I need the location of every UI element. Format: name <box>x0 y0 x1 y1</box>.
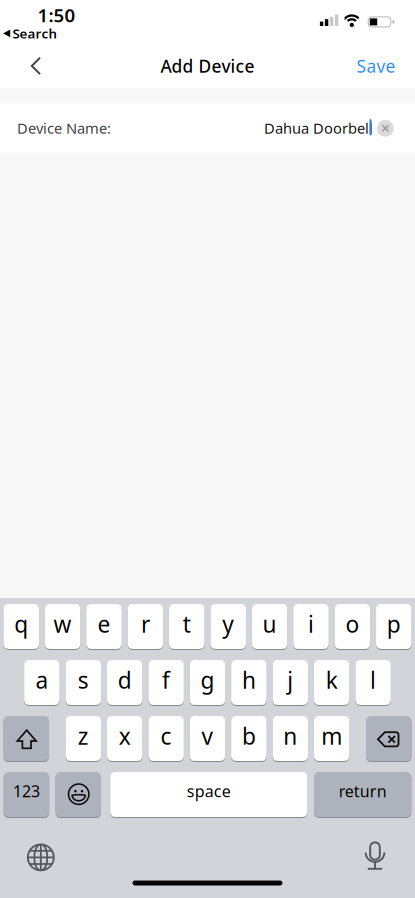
button[interactable]: a <box>24 660 60 705</box>
staticText: k <box>326 665 338 695</box>
button[interactable]: m <box>314 716 349 761</box>
button[interactable]: o <box>335 604 370 649</box>
button[interactable]: e <box>86 604 122 649</box>
staticText: space <box>187 780 231 802</box>
staticText: d <box>118 665 132 695</box>
button[interactable]: w <box>45 604 80 649</box>
staticText: b <box>242 721 256 751</box>
staticText: o <box>345 609 359 639</box>
staticText: r <box>141 609 150 639</box>
staticText: Device Name: <box>17 118 111 138</box>
staticText: z <box>78 721 89 751</box>
staticText: c <box>161 721 172 751</box>
button[interactable] <box>358 839 392 873</box>
staticText: f <box>162 665 170 695</box>
button[interactable]: v <box>190 716 225 761</box>
button[interactable]: q <box>3 604 39 649</box>
staticText: v <box>201 721 213 751</box>
button[interactable]: space <box>110 772 307 817</box>
button[interactable]: k <box>314 660 349 705</box>
staticText: p <box>387 609 401 639</box>
button[interactable]: r <box>128 604 163 649</box>
button[interactable]: c <box>148 716 184 761</box>
staticText: a <box>35 665 48 695</box>
staticText: return <box>339 780 387 802</box>
staticText: Add Device <box>160 54 254 77</box>
staticText: y <box>222 609 234 639</box>
staticText: q <box>14 609 28 639</box>
button[interactable]: Save <box>356 54 395 77</box>
button[interactable]: f <box>148 660 184 705</box>
button[interactable] <box>55 772 101 817</box>
button[interactable] <box>14 44 58 88</box>
button[interactable]: d <box>107 660 142 705</box>
button[interactable]: z <box>66 716 101 761</box>
staticText: s <box>78 665 89 695</box>
staticText: e <box>97 609 110 639</box>
button[interactable]: i <box>293 604 329 649</box>
staticText: m <box>321 721 342 751</box>
staticText: g <box>200 665 214 695</box>
button[interactable]: j <box>273 660 308 705</box>
button[interactable]: g <box>190 660 225 705</box>
staticText: Dahua Doorbell <box>264 118 373 138</box>
staticText: j <box>287 665 293 695</box>
button[interactable]: n <box>273 716 308 761</box>
staticText: w <box>54 609 72 639</box>
staticText: x <box>119 721 131 751</box>
button[interactable] <box>3 716 49 761</box>
button[interactable]: h <box>231 660 267 705</box>
button[interactable]: x <box>107 716 142 761</box>
staticText: 1:50 <box>37 3 75 27</box>
button[interactable]: l <box>355 660 391 705</box>
button[interactable] <box>24 840 58 874</box>
button[interactable]: y <box>210 604 246 649</box>
button[interactable]: 123 <box>4 772 49 817</box>
staticText: l <box>370 665 376 695</box>
staticText: Search <box>12 24 57 42</box>
staticText: i <box>308 609 314 639</box>
button[interactable]: t <box>169 604 204 649</box>
staticText: n <box>283 721 297 751</box>
button[interactable] <box>0 103 415 153</box>
staticText: u <box>263 609 277 639</box>
button[interactable]: s <box>66 660 101 705</box>
button[interactable] <box>377 120 394 137</box>
button[interactable]: return <box>314 772 411 817</box>
button[interactable] <box>366 716 411 761</box>
button[interactable]: b <box>231 716 267 761</box>
button[interactable]: u <box>252 604 287 649</box>
staticText: h <box>242 665 256 695</box>
button[interactable]: p <box>376 604 411 649</box>
staticText: t <box>183 609 191 639</box>
staticText: Save <box>356 54 395 77</box>
staticText: 123 <box>13 780 40 802</box>
